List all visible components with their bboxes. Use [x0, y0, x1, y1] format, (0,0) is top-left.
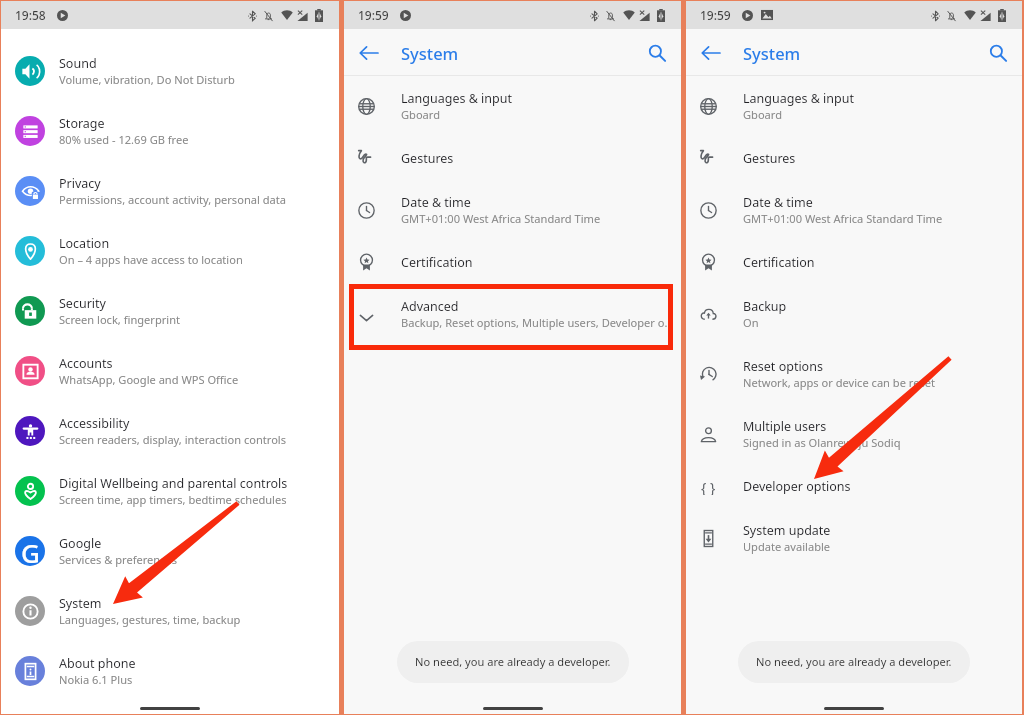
staticText: Gestures: [401, 150, 454, 167]
button[interactable]: System update: [686, 508, 1022, 568]
staticText: Location: [59, 235, 110, 252]
button[interactable]: Storage: [1, 101, 339, 161]
button[interactable]: Gestures: [344, 136, 681, 180]
button[interactable]: Gestures: [686, 136, 1022, 180]
staticText: 19:58: [15, 7, 46, 23]
staticText: Sound: [59, 55, 97, 72]
staticText: Date & time: [743, 194, 813, 211]
button[interactable]: Date & time: [686, 180, 1022, 240]
button[interactable]: Languages & input: [344, 76, 681, 136]
staticText: Google: [59, 535, 102, 552]
staticText: Developer options: [743, 478, 851, 495]
staticText: Reset options: [743, 358, 823, 375]
staticText: Languages, gestures, time, backup: [59, 612, 241, 627]
staticText: Permissions, account activity, personal …: [59, 192, 286, 207]
staticText: GMT+01:00 West Africa Standard Time: [743, 211, 943, 226]
staticText: Security: [59, 295, 106, 312]
staticText: Update available: [743, 539, 831, 554]
staticText: Gestures: [743, 150, 796, 167]
staticText: About phone: [59, 655, 136, 672]
staticText: 19:59: [358, 7, 389, 23]
staticText: Volume, vibration, Do Not Disturb: [59, 72, 235, 87]
staticText: { }: [701, 478, 716, 495]
button[interactable]: Advanced: [349, 284, 673, 350]
staticText: System update: [743, 522, 831, 539]
staticText: Accounts: [59, 355, 113, 372]
staticText: Screen time, app timers, bedtime schedul…: [59, 492, 287, 507]
button[interactable]: G: [1, 521, 339, 581]
button[interactable]: Digital Wellbeing and parental controls: [1, 461, 339, 521]
staticText: System: [401, 42, 459, 64]
staticText: Screen readers, display, interaction con…: [59, 432, 287, 447]
button[interactable]: Back: [352, 36, 386, 70]
staticText: Advanced: [401, 298, 459, 315]
button[interactable]: Certification: [686, 240, 1022, 284]
button[interactable]: Search: [640, 36, 674, 70]
staticText: Nokia 6.1 Plus: [59, 672, 133, 687]
staticText: WhatsApp, Google and WPS Office: [59, 372, 239, 387]
staticText: On: [743, 315, 759, 330]
button[interactable]: System: [1, 581, 339, 641]
staticText: No need, you are already a developer.: [415, 654, 611, 669]
staticText: Network, apps or device can be reset: [743, 375, 936, 390]
staticText: Certification: [743, 254, 815, 271]
staticText: Date & time: [401, 194, 471, 211]
button[interactable]: Privacy: [1, 161, 339, 221]
button[interactable]: Search: [981, 36, 1015, 70]
button[interactable]: About phone: [1, 641, 339, 701]
button[interactable]: Accessibility: [1, 401, 339, 461]
staticText: Backup: [743, 298, 787, 315]
button[interactable]: { }: [686, 464, 1022, 508]
button[interactable]: Security: [1, 281, 339, 341]
staticText: G: [21, 536, 40, 565]
staticText: Accessibility: [59, 415, 130, 432]
staticText: Digital Wellbeing and parental controls: [59, 475, 288, 492]
button[interactable]: Sound: [1, 41, 339, 101]
staticText: 19:59: [700, 7, 731, 23]
button[interactable]: Certification: [344, 240, 681, 284]
staticText: Storage: [59, 115, 105, 132]
button[interactable]: Back: [694, 36, 728, 70]
button[interactable]: Date & time: [344, 180, 681, 240]
staticText: Gboard: [401, 107, 441, 122]
button[interactable]: Backup: [686, 284, 1022, 344]
staticText: No need, you are already a developer.: [756, 654, 952, 669]
staticText: Languages & input: [743, 90, 854, 107]
staticText: On – 4 apps have access to location: [59, 252, 243, 267]
button[interactable]: Multiple users: [686, 404, 1022, 464]
button[interactable]: Accounts: [1, 341, 339, 401]
staticText: Languages & input: [401, 90, 512, 107]
staticText: System: [59, 595, 102, 612]
staticText: Backup, Reset options, Multiple users, D…: [401, 315, 671, 330]
button[interactable]: Location: [1, 221, 339, 281]
staticText: Certification: [401, 254, 473, 271]
staticText: Screen lock, fingerprint: [59, 312, 181, 327]
staticText: GMT+01:00 West Africa Standard Time: [401, 211, 601, 226]
staticText: Multiple users: [743, 418, 827, 435]
staticText: Gboard: [743, 107, 783, 122]
staticText: 80% used - 12.69 GB free: [59, 132, 189, 147]
staticText: Signed in as Olanrewaju Sodiq: [743, 435, 901, 450]
button[interactable]: Reset options: [686, 344, 1022, 404]
staticText: System: [743, 42, 801, 64]
staticText: Privacy: [59, 175, 101, 192]
button[interactable]: Languages & input: [686, 76, 1022, 136]
staticText: Services & preferences: [59, 552, 178, 567]
